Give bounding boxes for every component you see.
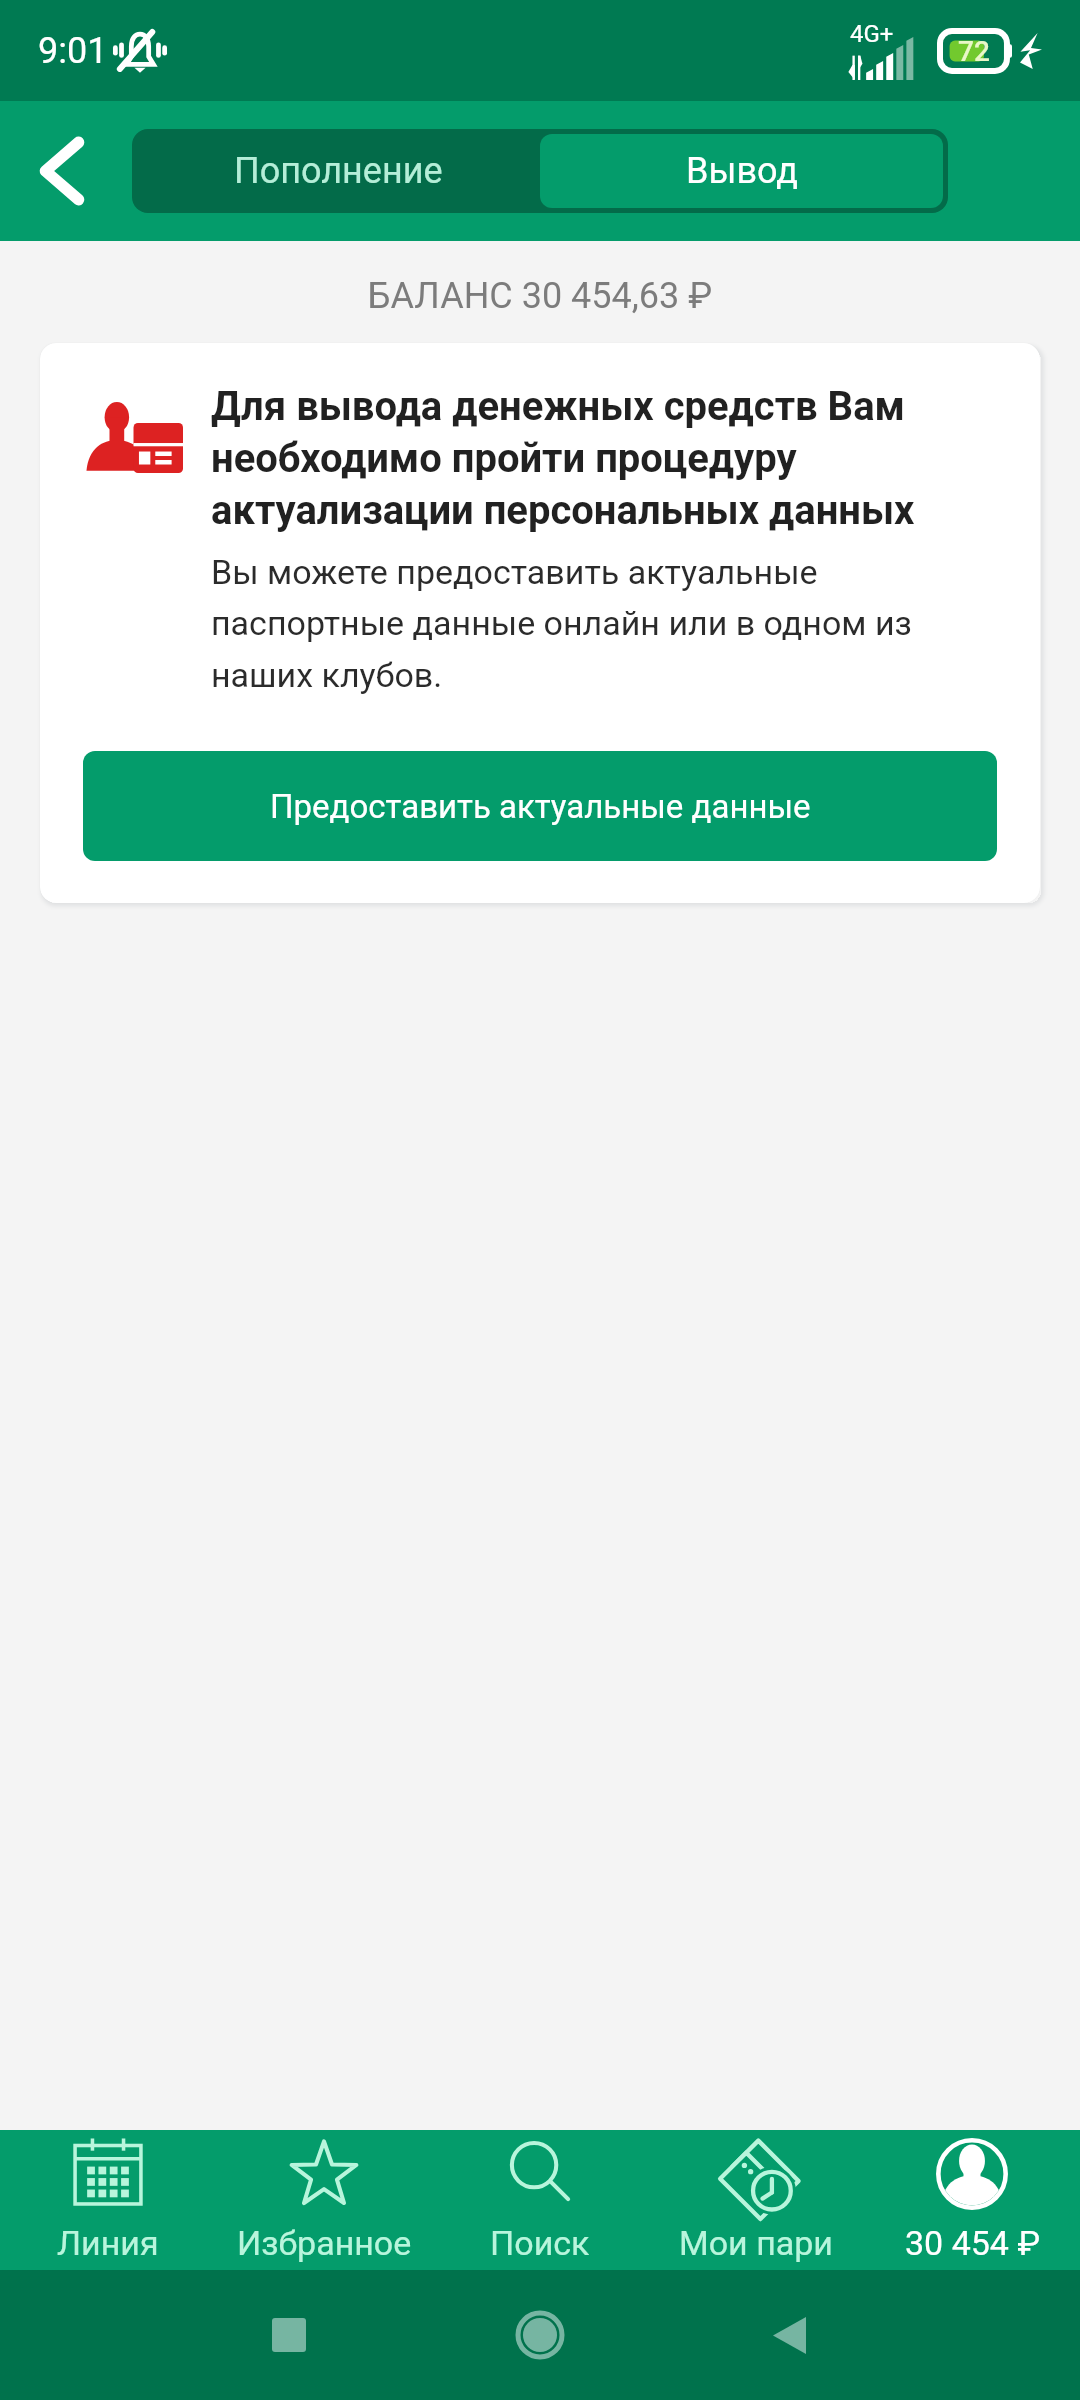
button[interactable]: Вывод [540,134,943,208]
button[interactable]: Home [494,2289,586,2381]
button[interactable]: Линия [0,2130,216,2270]
button[interactable]: 30 454 ₽ [864,2130,1080,2270]
staticText: Вы можете предоставить актуальные паспор… [211,552,1004,695]
staticText: Предоставить актуальные данные [270,787,811,826]
staticText: БАЛАНС 30 454,63 ₽ [0,275,1080,317]
button[interactable]: Предоставить актуальные данные [83,751,997,861]
button[interactable]: Мои пари [648,2130,864,2270]
button[interactable]: Back [20,129,104,213]
staticText: 9:01 [38,30,108,72]
staticText: Вывод [686,150,798,192]
staticText: Поиск [490,2223,590,2263]
staticText: Мои пари [679,2223,833,2263]
button[interactable]: Back [743,2289,835,2381]
staticText: 4G+ [850,20,894,48]
button[interactable]: Recents [243,2289,335,2381]
button[interactable]: Пополнение [137,134,540,208]
staticText: Линия [57,2223,159,2263]
staticText: Для вывода денежных средств Вам необходи… [211,383,1004,534]
button[interactable]: Избранное [216,2130,432,2270]
button[interactable]: Поиск [432,2130,648,2270]
staticText: 30 454 ₽ [905,2223,1040,2263]
staticText: Избранное [237,2223,412,2263]
staticText: 72 [958,35,990,68]
staticText: Пополнение [234,150,443,192]
